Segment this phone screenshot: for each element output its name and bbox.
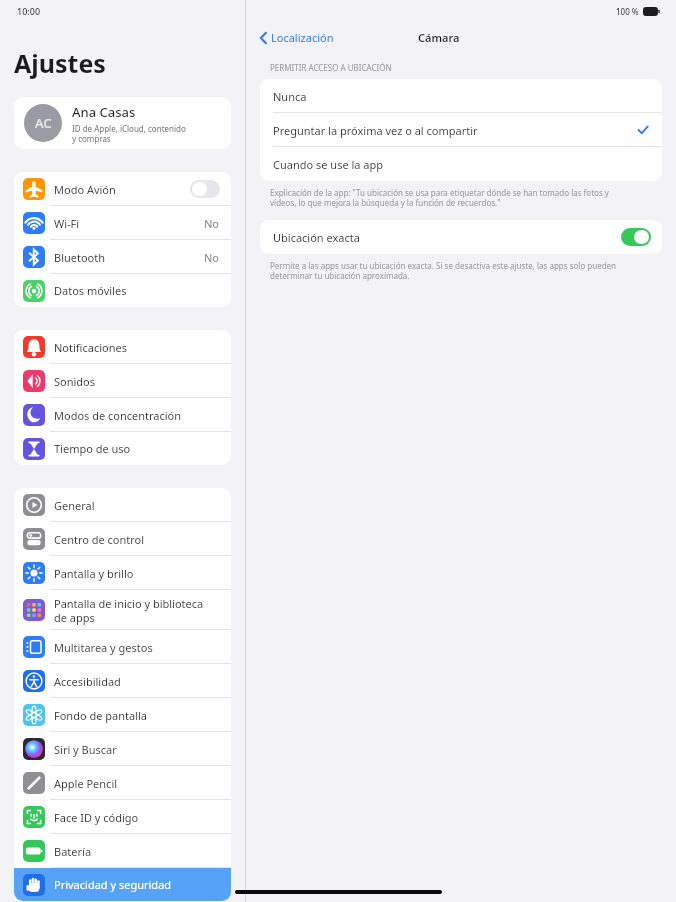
button[interactable]: Centro de control [14,522,231,556]
staticText: Face ID y código [54,810,220,825]
button[interactable]: Ubicación exacta [260,220,662,254]
button[interactable]: Modo Avión [14,172,231,206]
staticText: Ana Casas [72,103,136,121]
button[interactable]: Modos de concentración [14,398,231,432]
staticText: Ajustes [14,46,106,80]
button[interactable]: Tiempo de uso [14,432,231,465]
staticText: Notificaciones [54,340,220,355]
button[interactable]: Multitarea y gestos [14,630,231,664]
staticText: No [204,250,220,265]
button[interactable] [190,180,220,198]
button[interactable]: Sonidos [14,364,231,398]
staticText: Pantalla y brillo [54,566,220,581]
staticText: 10:00 [17,5,41,17]
button[interactable]: Pantalla y brillo [14,556,231,590]
button[interactable]: Batería [14,834,231,868]
button[interactable]: Datos móviles [14,274,231,307]
staticText: Bluetooth [54,250,204,265]
button[interactable]: Preguntar la próxima vez o al compartir [260,113,662,147]
button[interactable]: Cuando se use la app [260,147,662,181]
button[interactable]: AC [14,97,231,149]
staticText: Tiempo de uso [54,441,220,456]
staticText: ID de Apple, iCloud, contenido y compras [72,123,186,144]
button[interactable]: Notificaciones [14,330,231,364]
staticText: Accesibilidad [54,674,220,689]
staticText: General [54,498,220,513]
button[interactable]: Siri y Buscar [14,732,231,766]
button[interactable]: Nunca [260,79,662,113]
button[interactable]: Fondo de pantalla [14,698,231,732]
staticText: Modo Avión [54,182,190,197]
button[interactable]: Localización [256,28,338,47]
button[interactable]: General [14,488,231,522]
staticText: Apple Pencil [54,776,220,791]
staticText: Cámara [418,30,460,45]
staticText: Privacidad y seguridad [54,877,220,892]
button[interactable]: Apple Pencil [14,766,231,800]
staticText: Sonidos [54,374,220,389]
staticText: Multitarea y gestos [54,640,220,655]
staticText: PERMITIR ACCESO A UBICACIÓN [270,62,392,73]
button[interactable] [621,228,651,246]
button[interactable]: Accesibilidad [14,664,231,698]
button[interactable]: Face ID y código [14,800,231,834]
button[interactable]: Privacidad y seguridad [14,868,231,901]
staticText: Wi-Fi [54,216,204,231]
staticText: Localización [271,30,334,45]
staticText: Siri y Buscar [54,742,220,757]
button[interactable]: Wi-Fi [14,206,231,240]
staticText: Permite a las apps usar tu ubicación exa… [270,260,617,281]
staticText: Ubicación exacta [273,230,621,245]
staticText: Cuando se use la app [273,157,649,172]
staticText: No [204,216,220,231]
staticText: Modos de concentración [54,408,220,423]
staticText: Nunca [273,89,649,104]
staticText: Fondo de pantalla [54,708,220,723]
button[interactable]: Pantalla de inicio y biblioteca de apps [14,590,231,630]
button[interactable]: Bluetooth [14,240,231,274]
staticText: 100 % [616,6,639,17]
staticText: Explicación de la app: "Tu ubicación se … [270,187,609,208]
staticText: AC [35,114,52,132]
staticText: Datos móviles [54,283,220,298]
staticText: Pantalla de inicio y biblioteca de apps [54,596,220,625]
staticText: Centro de control [54,532,220,547]
staticText: Batería [54,844,220,859]
staticText: Preguntar la próxima vez o al compartir [273,123,637,138]
